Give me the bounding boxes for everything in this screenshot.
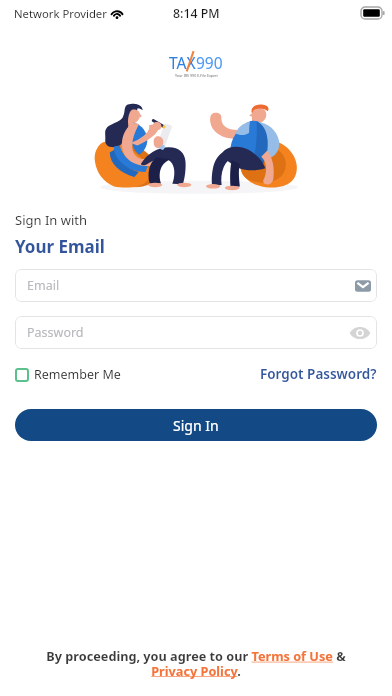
staticText: Password (27, 324, 349, 341)
other: Show password (349, 322, 371, 344)
staticText: Your Email (15, 235, 105, 258)
button[interactable]: Remember Me (15, 366, 121, 383)
staticText: TAX (169, 52, 196, 73)
staticText: Forgot Password? (260, 365, 377, 383)
button[interactable]: Email (15, 269, 377, 302)
staticText: 8:14 PM (173, 5, 220, 22)
staticText: Sign In (173, 416, 219, 435)
other: Email (355, 278, 371, 294)
button[interactable]: Forgot Password? (260, 365, 377, 383)
button[interactable]: Password (15, 316, 377, 349)
staticText: Network Provider (14, 6, 107, 21)
staticText: 990 (196, 52, 223, 73)
staticText: Email (27, 277, 355, 294)
button[interactable]: Sign In (15, 409, 377, 441)
staticText: Your IRS 990 E-File Expert (175, 73, 218, 78)
staticText: By proceeding, you agree to our Terms of… (46, 647, 346, 679)
staticText: Remember Me (34, 366, 121, 383)
staticText: Sign In with (15, 211, 88, 229)
